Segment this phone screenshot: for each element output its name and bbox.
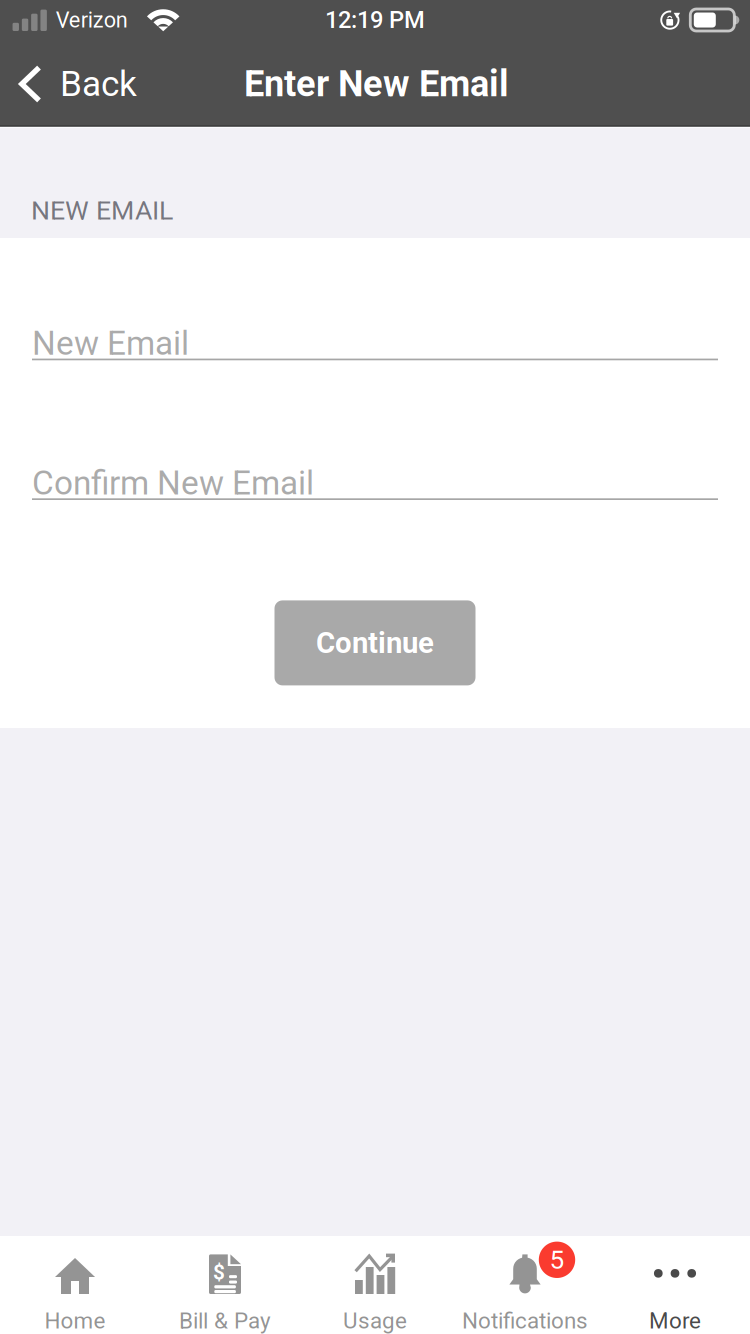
button[interactable]: Usage: [300, 1236, 450, 1334]
staticText: Home: [44, 1308, 105, 1334]
button[interactable]: $: [150, 1236, 300, 1334]
staticText: Continue: [316, 626, 434, 660]
button[interactable]: Home: [0, 1236, 150, 1334]
button[interactable]: New Email: [32, 329, 718, 365]
staticText: Usage: [343, 1308, 407, 1334]
button[interactable]: Back: [0, 40, 153, 128]
staticText: New Email: [32, 324, 189, 363]
staticText: Verizon: [56, 7, 128, 33]
staticText: Enter New Email: [244, 63, 509, 105]
staticText: More: [649, 1308, 701, 1334]
staticText: Back: [60, 63, 137, 105]
staticText: Notifications: [462, 1308, 588, 1334]
button[interactable]: Confirm New Email: [32, 469, 718, 504]
staticText: NEW EMAIL: [31, 195, 173, 226]
staticText: 5: [549, 1244, 564, 1275]
staticText: $: [213, 1260, 225, 1284]
button[interactable]: Continue: [274, 600, 475, 685]
staticText: 12:19 PM: [325, 6, 425, 34]
staticText: Bill & Pay: [179, 1308, 271, 1334]
button[interactable]: 5: [450, 1236, 600, 1334]
staticText: Confirm New Email: [32, 464, 314, 503]
button[interactable]: More: [600, 1236, 750, 1334]
